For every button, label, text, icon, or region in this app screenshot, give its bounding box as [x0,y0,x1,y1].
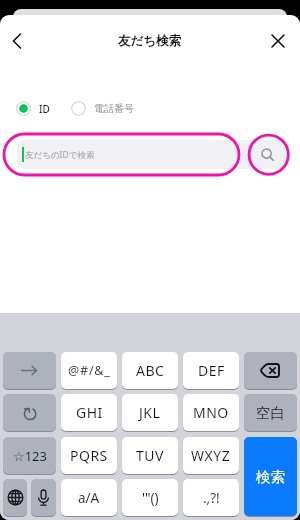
button[interactable]: @#/&_ [61,352,117,389]
button[interactable]: 空白 [244,394,297,431]
button[interactable]: TUV [122,437,178,474]
button[interactable] [244,352,297,389]
button[interactable]: WXYZ [183,437,239,474]
staticText: 空白 [256,404,285,422]
staticText: 検索 [256,468,285,486]
button[interactable]: PQRS [61,437,117,474]
staticText: ABC [136,361,165,380]
button[interactable] [1,28,27,54]
staticText: 友だちのIDで検索 [25,149,95,161]
staticText: '"() [142,489,159,507]
button[interactable]: ID [16,101,50,116]
button[interactable]: JKL [122,394,178,431]
staticText: 友だち検索 [118,33,182,49]
staticText: 電話番号 [94,102,134,115]
button[interactable]: '"() [122,479,178,516]
button[interactable] [3,479,27,516]
button[interactable] [265,28,291,54]
staticText: PQRS [70,446,108,465]
button[interactable]: ABC [122,352,178,389]
button[interactable]: 検索 [244,437,297,516]
staticText: MNO [193,403,229,422]
staticText: @#/&_ [68,362,111,379]
staticText: DEF [198,361,225,380]
staticText: a/A [78,489,100,507]
button[interactable] [3,394,56,431]
button[interactable]: DEF [183,352,239,389]
button[interactable]: a/A [61,479,117,516]
button[interactable]: .,?! [183,479,239,516]
button[interactable] [31,479,56,516]
button[interactable]: 電話番号 [71,101,134,116]
staticText: ID [39,102,50,116]
button[interactable]: GHI [61,394,117,431]
button[interactable] [3,352,56,389]
staticText: WXYZ [191,446,231,465]
button[interactable]: ☆123 [3,437,56,474]
staticText: .,?! [203,489,220,507]
button[interactable]: 友だちのIDで検索 [17,140,285,169]
staticText: GHI [76,403,103,422]
button[interactable]: MNO [183,394,239,431]
staticText: ☆123 [13,447,47,465]
staticText: TUV [136,446,164,465]
staticText: JKL [139,403,161,422]
